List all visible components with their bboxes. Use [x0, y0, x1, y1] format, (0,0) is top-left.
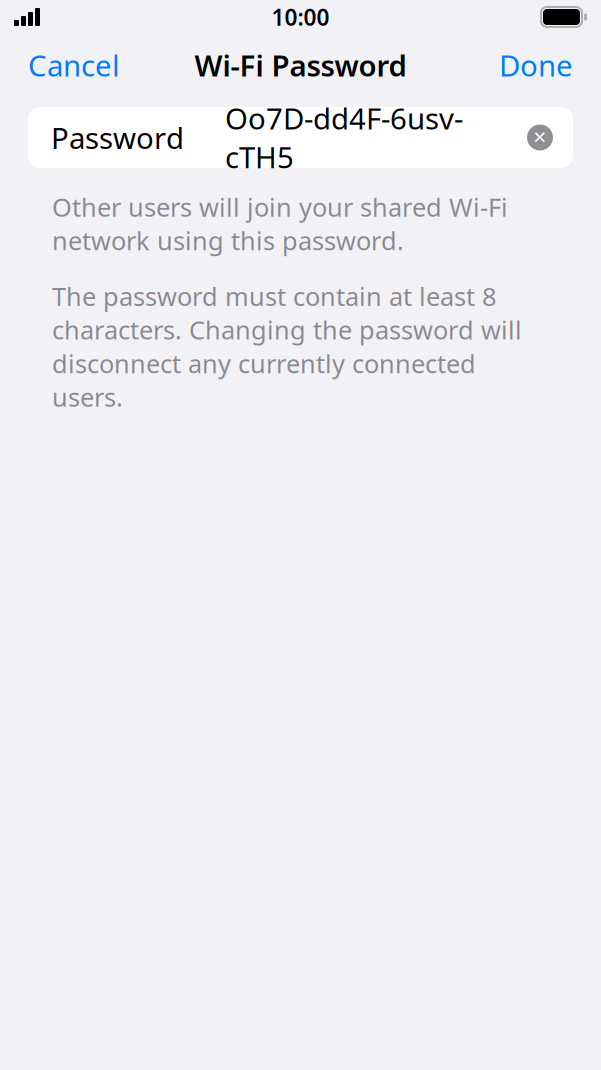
staticText: 10:00: [271, 2, 329, 32]
staticText: The password must contain at least 8 cha…: [52, 279, 522, 414]
staticText: Oo7D-dd4F-6usv-cTH5: [225, 98, 463, 176]
staticText: ✕: [532, 128, 547, 147]
staticText: Password: [51, 118, 184, 157]
button[interactable]: Done: [485, 35, 587, 94]
staticText: Wi-Fi Password: [194, 45, 406, 84]
button[interactable]: Cancel: [14, 35, 134, 94]
staticText: Done: [499, 45, 573, 84]
staticText: Other users will join your shared Wi-Fi …: [52, 190, 508, 257]
button[interactable]: Clear password: [519, 116, 561, 158]
staticText: Cancel: [28, 45, 120, 84]
